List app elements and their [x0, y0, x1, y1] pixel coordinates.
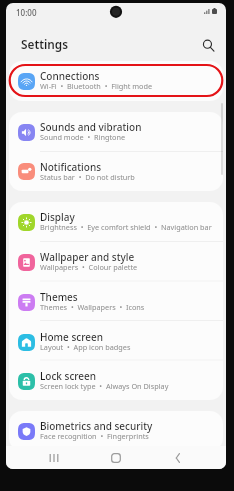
staticText: Brightness • Eye comfort shield • Naviga… [40, 222, 212, 232]
staticText: Home screen [40, 330, 103, 344]
staticText: Themes • Wallpapers • Icons [40, 302, 145, 312]
staticText: Themes [40, 290, 78, 304]
button[interactable]: Lock screen [9, 362, 223, 400]
button[interactable]: Back [156, 446, 200, 469]
staticText: Sounds and vibration [40, 120, 142, 134]
button[interactable]: Themes [9, 282, 223, 322]
staticText: Wi-Fi • Bluetooth • Flight mode [40, 81, 153, 91]
button[interactable]: Sounds and vibration [9, 112, 223, 152]
button[interactable]: Notifications [9, 152, 223, 191]
staticText: Notifications [40, 160, 102, 174]
staticText: Display [40, 210, 75, 224]
staticText: Layout • App icon badges [40, 342, 131, 352]
staticText: Connections [40, 69, 100, 83]
staticText: Status bar • Do not disturb [40, 172, 135, 182]
button[interactable]: Home screen [9, 322, 223, 362]
staticText: Lock screen [40, 369, 97, 383]
button[interactable]: Recents [32, 446, 76, 469]
button[interactable]: Display [9, 202, 223, 242]
button[interactable]: Biometrics and security [9, 411, 223, 451]
staticText: Sound mode • Ringtone [40, 132, 126, 142]
button[interactable]: Home [94, 446, 138, 469]
button[interactable]: Search [197, 34, 219, 56]
button[interactable]: Wallpaper and style [9, 242, 223, 282]
staticText: Wallpaper and style [40, 250, 135, 264]
staticText: Biometrics and security [40, 419, 153, 433]
staticText: Screen lock type • Always On Display [40, 381, 169, 391]
button[interactable]: Connections [9, 61, 223, 101]
staticText: Wallpapers • Colour palette [40, 262, 138, 272]
staticText: Face recognition • Fingerprints [40, 431, 149, 441]
staticText: 10:00 [16, 7, 37, 18]
staticText: Settings [21, 36, 69, 52]
